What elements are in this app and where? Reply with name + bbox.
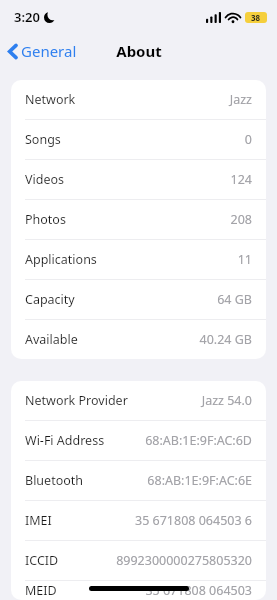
- staticText: 35 671808 064503: [145, 582, 252, 599]
- staticText: Capacity: [25, 291, 75, 308]
- staticText: Jazz: [229, 91, 252, 108]
- button[interactable]: Network: [11, 80, 266, 119]
- staticText: Wi-Fi Address: [25, 432, 105, 449]
- staticText: 3:20: [14, 8, 40, 26]
- staticText: Network Provider: [25, 392, 128, 409]
- staticText: About: [116, 41, 162, 61]
- staticText: Network: [25, 91, 76, 108]
- button[interactable]: Songs: [11, 120, 266, 159]
- button[interactable]: Network Provider: [11, 381, 266, 420]
- staticText: 40.24 GB: [199, 331, 252, 348]
- staticText: 35 671808 064503 6: [134, 512, 252, 529]
- staticText: 38: [251, 12, 261, 23]
- staticText: 68:AB:1E:9F:AC:6D: [145, 432, 252, 449]
- other: Home indicator: [89, 586, 189, 591]
- button[interactable]: ICCID: [11, 541, 266, 580]
- staticText: Applications: [25, 251, 97, 268]
- staticText: 68:AB:1E:9F:AC:6E: [147, 472, 252, 489]
- staticText: 124: [230, 171, 252, 188]
- staticText: Songs: [25, 131, 61, 148]
- staticText: 0: [244, 131, 252, 148]
- staticText: 8992300000275805320: [116, 552, 252, 569]
- staticText: Photos: [25, 211, 66, 228]
- button[interactable]: Available: [11, 320, 266, 359]
- staticText: 11: [237, 251, 252, 268]
- button[interactable]: General: [0, 37, 85, 65]
- staticText: Available: [25, 331, 78, 348]
- staticText: ICCID: [25, 552, 59, 569]
- button[interactable]: Wi-Fi Address: [11, 421, 266, 460]
- staticText: Videos: [25, 171, 65, 188]
- staticText: Bluetooth: [25, 472, 84, 489]
- button[interactable]: Videos: [11, 160, 266, 199]
- staticText: 64 GB: [217, 291, 252, 308]
- button[interactable]: IMEI: [11, 501, 266, 540]
- staticText: 208: [230, 211, 252, 228]
- staticText: IMEI: [25, 512, 52, 529]
- staticText: MEID: [25, 582, 57, 599]
- staticText: Jazz 54.0: [201, 392, 252, 409]
- button[interactable]: Capacity: [11, 280, 266, 319]
- staticText: General: [21, 41, 77, 61]
- button[interactable]: Bluetooth: [11, 461, 266, 500]
- button[interactable]: Photos: [11, 200, 266, 239]
- button[interactable]: MEID: [11, 581, 266, 600]
- button[interactable]: Applications: [11, 240, 266, 279]
